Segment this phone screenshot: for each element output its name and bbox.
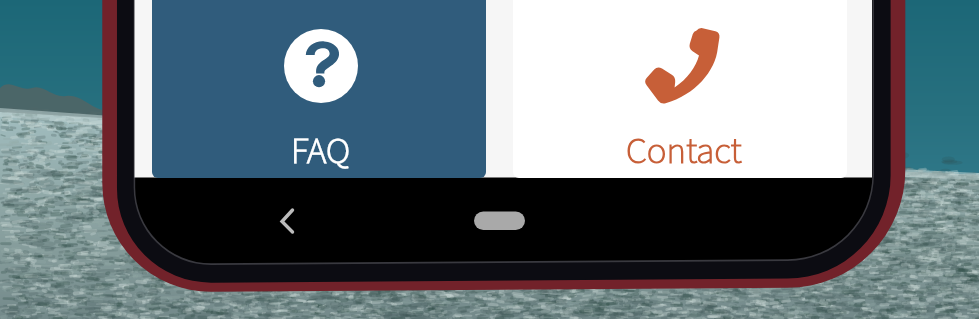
staticText: Contact: [626, 125, 742, 178]
button[interactable]: [513, 0, 847, 178]
button[interactable]: Home: [455, 196, 545, 246]
button[interactable]: [152, 0, 486, 178]
staticText: FAQ: [291, 125, 350, 178]
button[interactable]: Back: [255, 196, 315, 246]
